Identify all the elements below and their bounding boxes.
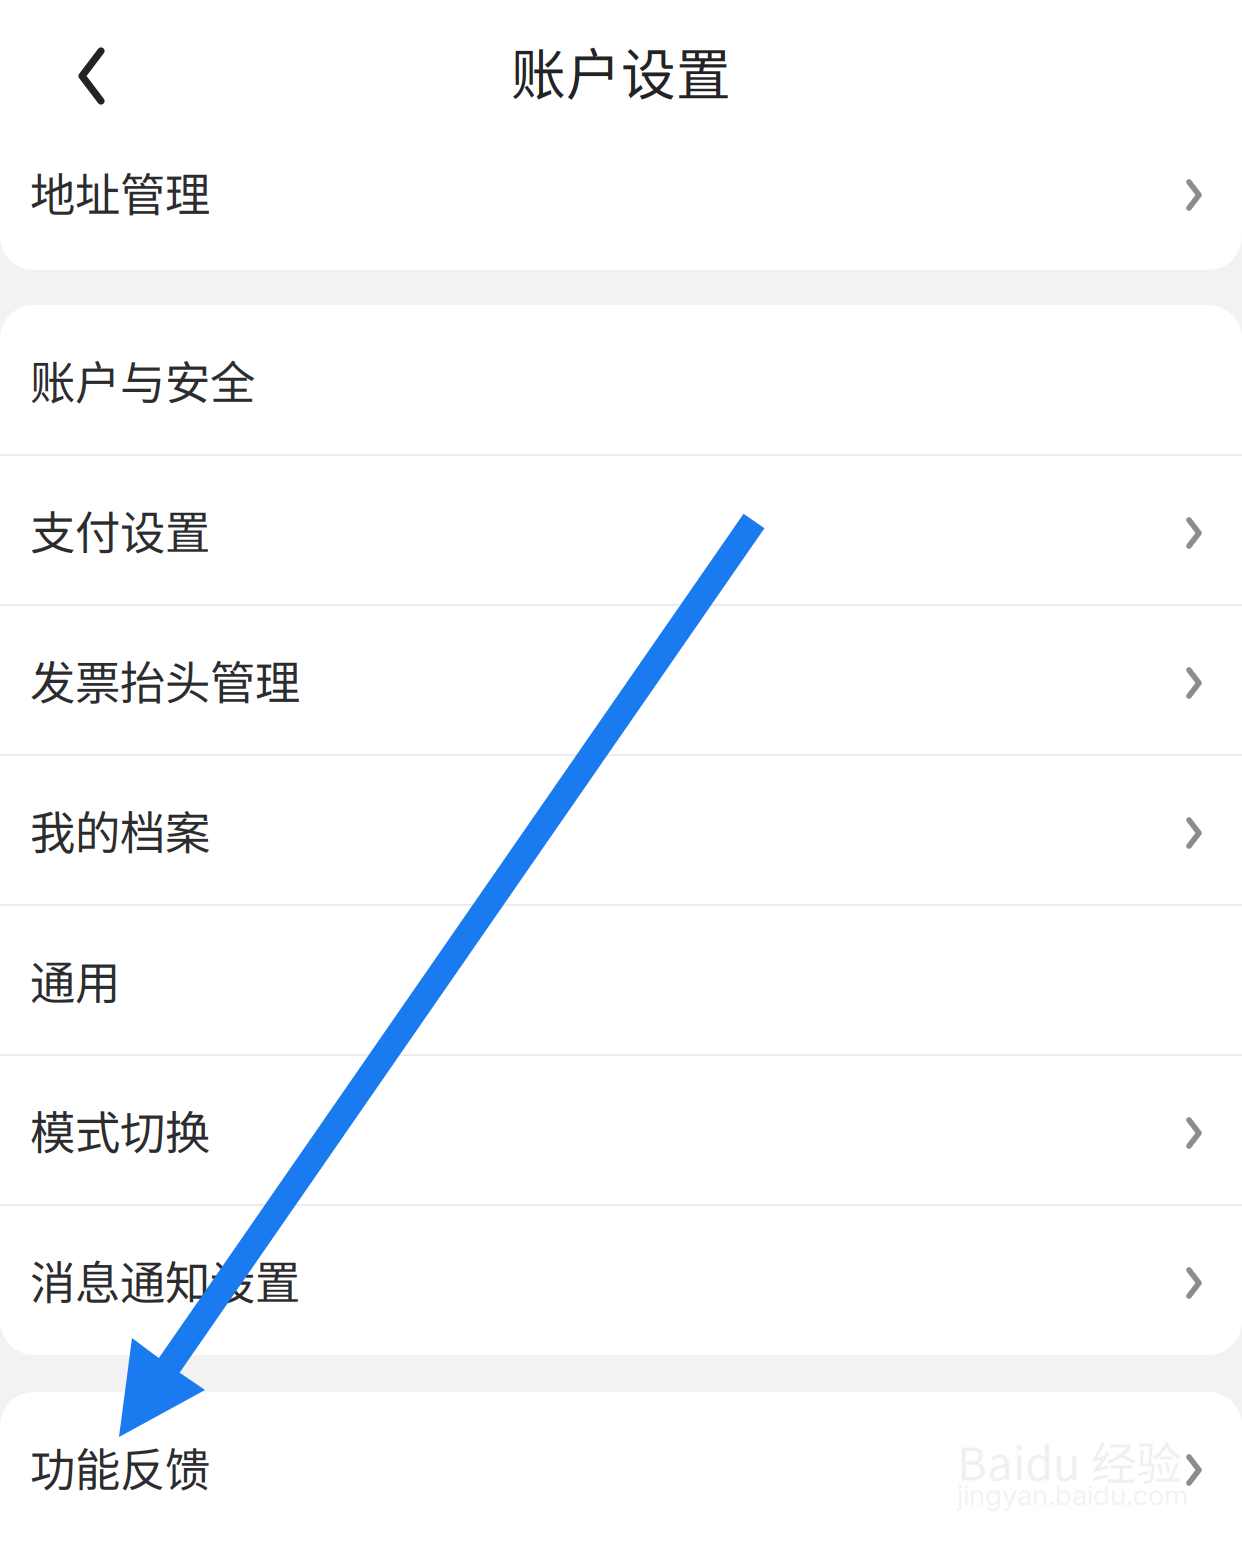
button[interactable]: 模式切换 [0,1055,1242,1205]
button[interactable]: 返回 [0,0,122,117]
staticText: 账户与安全 [30,347,255,413]
button[interactable]: 功能反馈 [0,1392,1242,1542]
staticText: 发票抬头管理 [30,647,300,713]
staticText: Baidu 经验 [957,1428,1181,1494]
button[interactable]: 通用 [0,905,1242,1055]
button[interactable]: 我的档案 [0,755,1242,905]
button[interactable]: 发票抬头管理 [0,605,1242,755]
staticText: 功能反馈 [30,1434,210,1500]
button[interactable]: 账户与安全 [0,305,1242,455]
staticText: 支付设置 [30,497,210,563]
button[interactable]: 地址管理 [0,117,1242,267]
button[interactable]: 消息通知设置 [0,1205,1242,1355]
staticText: 通用 [30,947,120,1013]
button[interactable]: 支付设置 [0,455,1242,605]
staticText: 消息通知设置 [30,1247,300,1313]
staticText: 模式切换 [30,1097,210,1163]
staticText: 我的档案 [30,797,210,863]
staticText: jingyan.baidu.com [957,1478,1188,1512]
staticText: 地址管理 [30,159,210,225]
staticText: 账户设置 [511,31,731,110]
